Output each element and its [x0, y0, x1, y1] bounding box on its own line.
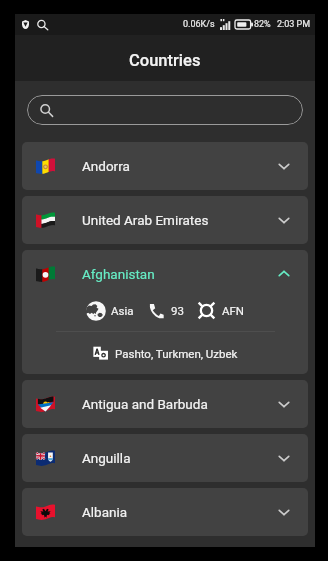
other: Expand	[277, 159, 291, 173]
button[interactable]: Afghanistan	[22, 250, 308, 374]
other: Expand	[277, 397, 291, 411]
other: Expand	[277, 451, 291, 465]
staticText: Andorra	[82, 158, 130, 174]
button[interactable]: United Arab Emirates	[22, 196, 308, 244]
staticText: United Arab Emirates	[82, 212, 209, 228]
staticText: AFN	[222, 304, 245, 317]
staticText: 0.06K/s	[183, 19, 215, 30]
staticText: Countries	[129, 51, 201, 70]
other: Collapse	[277, 267, 291, 281]
staticText: 2:03 PM	[277, 19, 311, 30]
staticText: 82%	[254, 19, 271, 30]
staticText: 93	[171, 304, 184, 317]
staticText: Anguilla	[82, 450, 131, 466]
button[interactable]: Search	[27, 95, 303, 125]
staticText: Asia	[111, 304, 134, 317]
staticText: Albania	[82, 504, 128, 520]
button[interactable]: Albania	[22, 488, 308, 536]
other: Expand	[277, 213, 291, 227]
staticText: Afghanistan	[82, 266, 155, 282]
button[interactable]: Anguilla	[22, 434, 308, 482]
button[interactable]: Antigua and Barbuda	[22, 380, 308, 428]
staticText: Pashto, Turkmen, Uzbek	[115, 347, 238, 360]
staticText: Antigua and Barbuda	[82, 396, 208, 412]
other: Search	[40, 104, 53, 117]
other: Expand	[277, 505, 291, 519]
button[interactable]: Andorra	[22, 142, 308, 190]
